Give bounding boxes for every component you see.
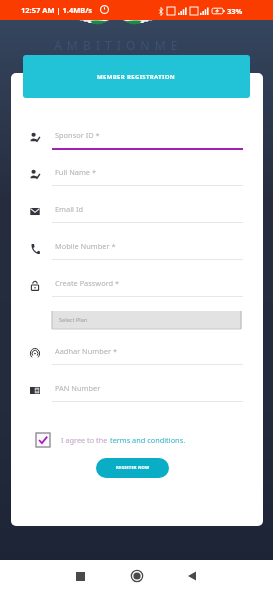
staticText: Sponsor ID * — [55, 130, 100, 140]
staticText: PAN Number — [55, 383, 101, 393]
button[interactable]: Create Password * — [24, 274, 244, 298]
staticText: 33% — [227, 6, 243, 16]
staticText: Aadhar Number * — [55, 346, 117, 356]
button[interactable]: Aadhar Number * — [24, 342, 244, 366]
button[interactable]: Home — [131, 570, 143, 582]
button[interactable]: Full Name * — [24, 163, 244, 187]
button[interactable]: PAN Number — [24, 379, 244, 403]
button[interactable]: REGISTER NOW — [96, 458, 169, 478]
button[interactable]: Back — [188, 571, 196, 581]
staticText: Mobile Number * — [55, 241, 116, 251]
staticText: Full Name * — [55, 167, 96, 177]
button[interactable]: Mobile Number * — [24, 237, 244, 261]
button[interactable]: Select Plan — [52, 311, 241, 329]
staticText: 12:57 AM | 1.4MB/s — [21, 5, 93, 15]
staticText: Email Id — [55, 204, 83, 214]
button[interactable]: MEMBER REGISTRATION — [23, 55, 250, 98]
staticText: Select Plan — [59, 316, 88, 324]
staticText: REGISTER NOW — [116, 465, 150, 471]
staticText: terms and conditions. — [110, 435, 186, 445]
staticText: Create Password * — [55, 278, 120, 288]
button[interactable]: Sponsor ID * — [24, 126, 244, 150]
staticText: MEMBER REGISTRATION — [97, 73, 176, 81]
staticText: AMBITIONME — [54, 37, 183, 53]
staticText: I agree to the — [61, 435, 110, 445]
button[interactable]: I agree to the — [36, 431, 186, 449]
button[interactable]: Email Id — [24, 200, 244, 224]
